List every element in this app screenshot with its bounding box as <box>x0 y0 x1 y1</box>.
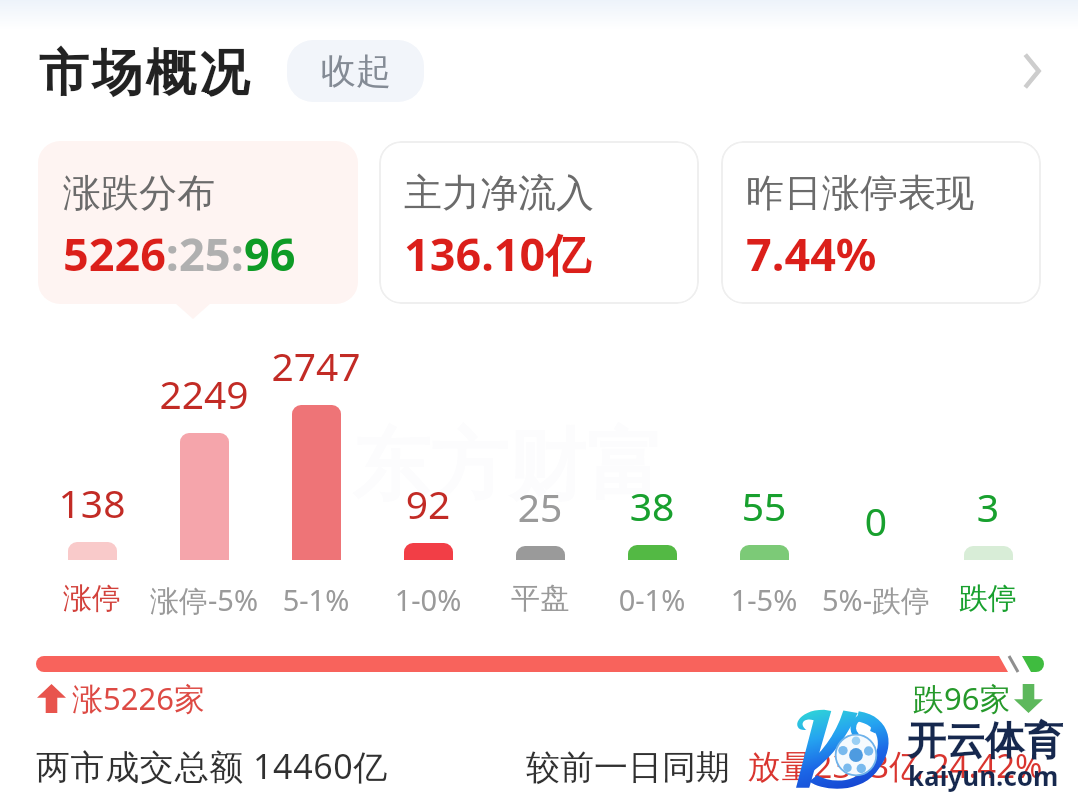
staticText: 5-1% <box>236 580 396 619</box>
staticText: 跌停 <box>908 580 1068 617</box>
staticText: 放量2383亿 24.42% <box>739 743 1043 788</box>
staticText: : <box>166 223 179 284</box>
staticText: 5%-跌停 <box>796 580 956 620</box>
staticText: 7.44% <box>746 223 877 284</box>
staticText: 5226 <box>63 223 166 284</box>
button[interactable]: 昨日涨停表现 <box>721 141 1041 304</box>
other: 上涨 <box>37 684 66 713</box>
staticText: 2747 <box>246 339 386 392</box>
button[interactable]: 主力净流入 <box>379 141 699 304</box>
staticText: 38 <box>582 479 722 532</box>
staticText: 涨跌分布 <box>63 169 215 217</box>
staticText: 96 <box>244 223 296 284</box>
button[interactable]: 市场概况 <box>37 42 251 105</box>
staticText: 55 <box>694 479 834 532</box>
staticText: 1-5% <box>684 580 844 619</box>
staticText: 平盘 <box>460 580 620 617</box>
other: 下跌 <box>1014 684 1043 713</box>
staticText: 东方财富 <box>352 417 664 515</box>
staticText: 开云体育 <box>907 716 1063 765</box>
button[interactable]: 收起 <box>287 40 424 102</box>
staticText: 2249 <box>134 367 274 420</box>
staticText: 138 <box>22 476 162 529</box>
staticText: 昨日涨停表现 <box>746 169 974 217</box>
staticText: 0-1% <box>572 580 732 619</box>
button[interactable]: 涨跌分布 <box>38 141 358 304</box>
staticText: 涨5226家 <box>72 677 205 719</box>
staticText: 1-0% <box>348 580 508 619</box>
staticText: 涨停-5% <box>124 580 284 620</box>
staticText: 两市成交总额 14460亿 <box>36 743 388 789</box>
staticText: 涨停 <box>12 580 172 617</box>
staticText: 25 <box>179 223 231 284</box>
staticText: 0 <box>806 494 946 547</box>
staticText: 3 <box>918 480 1058 533</box>
staticText: 市场概况 <box>37 42 251 105</box>
staticText: kaiyun.com <box>908 758 1059 793</box>
staticText: : <box>231 223 244 284</box>
staticText: 25 <box>470 480 610 533</box>
staticText: 跌96家 <box>913 677 1011 719</box>
staticText: 136.10亿 <box>404 223 591 284</box>
staticText: 92 <box>358 477 498 530</box>
staticText: 较前一日同期 <box>526 743 739 789</box>
staticText: 主力净流入 <box>404 169 594 217</box>
staticText: 收起 <box>321 49 391 93</box>
button[interactable]: 展开更多 <box>1000 40 1062 102</box>
